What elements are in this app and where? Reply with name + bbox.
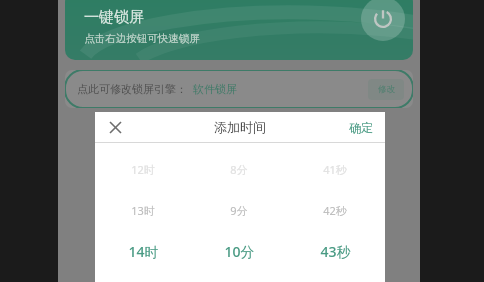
staticText: 一键锁屏: [84, 8, 144, 27]
button[interactable]: 14时: [98, 238, 188, 264]
staticText: 点此可修改锁屏引擎：: [77, 82, 187, 96]
button[interactable]: 42秒: [290, 197, 380, 223]
staticText: 41秒: [323, 162, 347, 177]
button[interactable]: 修改: [368, 79, 404, 100]
button[interactable]: 一键锁屏: [65, 0, 413, 60]
button[interactable]: Lock screen: [361, 0, 405, 41]
button[interactable]: Close: [102, 114, 128, 140]
staticText: 添加时间: [214, 119, 266, 135]
staticText: 修改: [378, 84, 395, 95]
button[interactable]: 41秒: [290, 156, 380, 182]
staticText: 9分: [230, 203, 248, 218]
staticText: 43秒: [320, 242, 351, 261]
button[interactable]: 10分: [194, 238, 284, 264]
button[interactable]: 确定: [346, 116, 376, 139]
staticText: 确定: [349, 120, 373, 135]
staticText: 8分: [230, 162, 248, 177]
staticText: 12时: [131, 162, 155, 177]
button[interactable]: 12时: [98, 156, 188, 182]
button[interactable]: 13时: [98, 197, 188, 223]
staticText: 13时: [131, 203, 155, 218]
staticText: 14时: [128, 242, 159, 261]
staticText: 软件锁屏: [193, 82, 237, 96]
staticText: 42秒: [323, 203, 347, 218]
button[interactable]: 点此可修改锁屏引擎：: [65, 70, 413, 108]
staticText: 10分: [224, 242, 255, 261]
button[interactable]: 9分: [194, 197, 284, 223]
button[interactable]: 43秒: [290, 238, 380, 264]
staticText: 点击右边按钮可快速锁屏: [84, 32, 200, 45]
button[interactable]: 8分: [194, 156, 284, 182]
